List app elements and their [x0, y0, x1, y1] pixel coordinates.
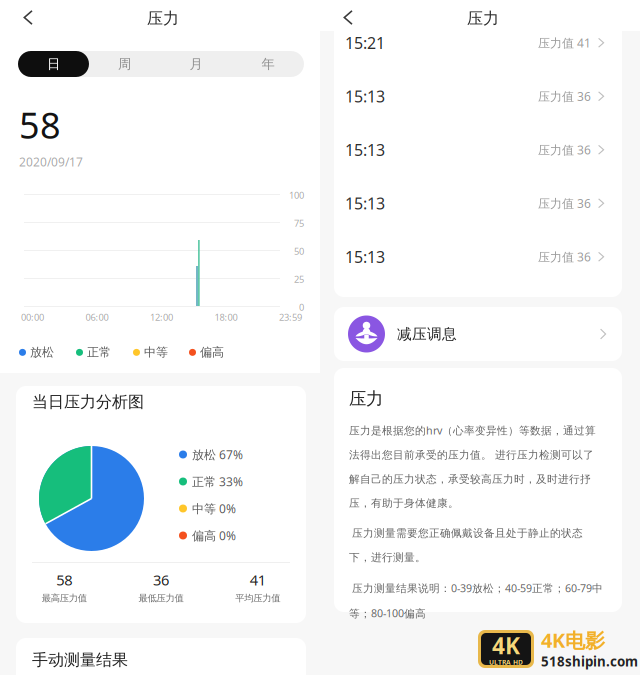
staticText: 压力	[349, 388, 383, 409]
button[interactable]: 15:13	[334, 123, 622, 176]
staticText: 压力值 36	[538, 142, 591, 158]
staticText: 压力值 36	[538, 88, 591, 104]
staticText: 15:21	[345, 32, 385, 53]
staticText: 偏高	[200, 345, 224, 360]
staticText: 15:13	[345, 139, 385, 160]
staticText: 25	[294, 273, 304, 285]
staticText: 压力值 41	[538, 35, 591, 51]
staticText: 15:13	[345, 246, 385, 267]
button[interactable]: 15:13	[334, 69, 622, 123]
staticText: 00:00	[21, 311, 44, 323]
staticText: 手动测量结果	[32, 650, 128, 670]
staticText: 58	[56, 570, 72, 589]
staticText: 正常 33%	[192, 473, 243, 489]
button[interactable]: 返回	[320, 0, 350, 31]
staticText: 12:00	[150, 311, 173, 323]
staticText: ULTRA HD	[489, 658, 523, 666]
staticText: 中等 0%	[192, 500, 236, 516]
staticText: 压力测量结果说明：0-39放松；40-59正常；60-79中等；80-100偏高	[349, 581, 603, 620]
staticText: 平均压力值	[235, 592, 280, 604]
staticText: 4K电影	[541, 627, 605, 653]
staticText: 日	[47, 56, 60, 72]
staticText: 0	[299, 301, 304, 313]
staticText: 518shipin.com	[541, 652, 638, 670]
staticText: 年	[261, 56, 274, 72]
staticText: 偏高 0%	[192, 527, 236, 543]
staticText: 2020/09/17	[19, 154, 83, 170]
staticText: 月	[189, 56, 202, 72]
staticText: 压力	[467, 9, 499, 28]
button[interactable]: 15:21	[334, 16, 622, 69]
button[interactable]: 日	[18, 51, 89, 77]
staticText: 放松	[30, 345, 54, 360]
staticText: 18:00	[214, 311, 237, 323]
staticText: 当日压力分析图	[32, 392, 144, 412]
staticText: 36	[153, 570, 169, 589]
staticText: 15:13	[345, 193, 385, 214]
staticText: 75	[294, 217, 304, 229]
staticText: 压力是根据您的hrv（心率变异性）等数据，通过算法得出您目前承受的压力值。 进行…	[349, 423, 596, 510]
staticText: 06:00	[85, 311, 108, 323]
staticText: 正常	[87, 345, 111, 360]
button[interactable]: 15:13	[334, 176, 622, 230]
staticText: 放松 67%	[192, 446, 243, 462]
staticText: 压力测量需要您正确佩戴设备且处于静止的状态下，进行测量。	[349, 527, 583, 564]
button[interactable]: 周	[89, 51, 160, 77]
staticText: 减压调息	[397, 325, 457, 343]
button[interactable]: 减压调息	[334, 307, 622, 361]
staticText: 41	[250, 570, 266, 589]
staticText: 压力值 36	[538, 249, 591, 265]
staticText: 58	[19, 101, 61, 149]
staticText: 最低压力值	[138, 592, 183, 604]
button[interactable]: 月	[160, 51, 232, 77]
staticText: 最高压力值	[42, 592, 87, 604]
staticText: 压力值 36	[538, 195, 591, 211]
staticText: 100	[289, 189, 304, 201]
staticText: 4K	[492, 630, 520, 661]
staticText: 周	[118, 56, 131, 72]
staticText: 50	[294, 245, 304, 257]
button[interactable]: 年	[232, 51, 304, 77]
button[interactable]: 15:13	[334, 230, 622, 283]
staticText: 23:59	[279, 311, 302, 323]
staticText: 15:13	[345, 86, 385, 107]
button[interactable]: 返回	[0, 0, 30, 31]
staticText: 中等	[144, 345, 168, 360]
staticText: 压力	[147, 9, 179, 28]
